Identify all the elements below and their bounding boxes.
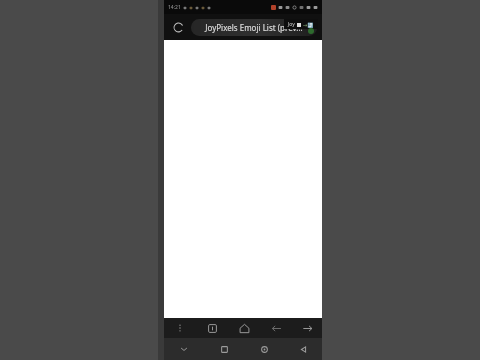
button[interactable]: JoyPixels Emoji List (prev... bbox=[191, 19, 317, 36]
button[interactable]: Stop loading bbox=[169, 18, 187, 36]
button[interactable]: Back bbox=[284, 338, 322, 360]
staticText: 14:21 bbox=[168, 4, 181, 11]
staticText: JoyPixels Emoji List (prev... bbox=[205, 22, 303, 33]
staticText: →⤴ bbox=[303, 22, 314, 28]
staticText: Joy bbox=[288, 21, 295, 28]
button[interactable]: Tabs bbox=[196, 318, 228, 338]
button[interactable]: More options bbox=[164, 318, 196, 338]
button[interactable]: Back bbox=[260, 318, 292, 338]
button[interactable]: Hide keyboard bbox=[164, 338, 204, 360]
button[interactable]: Home bbox=[228, 318, 260, 338]
button[interactable]: Recents bbox=[204, 338, 244, 360]
button[interactable]: Forward bbox=[292, 318, 322, 338]
button[interactable]: Home bbox=[244, 338, 284, 360]
